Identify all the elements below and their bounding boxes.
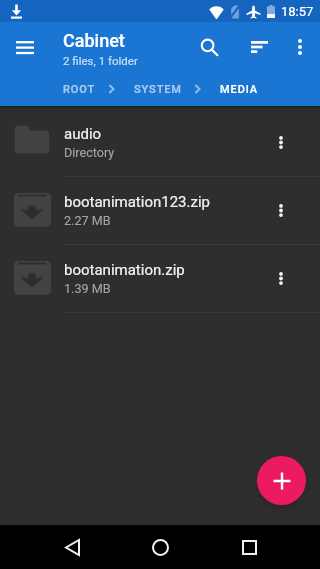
staticText: bootanimation123.zip [64, 193, 210, 211]
staticText: 2.27 MB [64, 213, 111, 228]
button[interactable]: More options [282, 29, 318, 65]
button[interactable]: ROOT [63, 83, 96, 96]
button[interactable]: Home [140, 527, 180, 567]
button[interactable]: Add [257, 456, 306, 505]
staticText: audio [64, 125, 102, 143]
button[interactable]: audio [0, 109, 320, 177]
button[interactable]: Recent apps [229, 527, 269, 567]
button[interactable]: bootanimation123.zip [0, 177, 320, 245]
staticText: 1.39 MB [64, 281, 111, 296]
staticText: SYSTEM [134, 83, 182, 96]
staticText: Directory [64, 145, 115, 160]
staticText: bootanimation.zip [64, 261, 185, 279]
staticText: 18:57 [281, 4, 314, 19]
staticText: ROOT [63, 83, 96, 96]
button[interactable]: Open navigation drawer [8, 30, 42, 64]
button[interactable]: MEDIA [220, 83, 259, 96]
staticText: 2 files, 1 folder [63, 54, 138, 67]
button[interactable]: SYSTEM [134, 83, 182, 96]
button[interactable]: File options [262, 177, 320, 244]
button[interactable]: File options [262, 245, 320, 312]
staticText: MEDIA [220, 83, 259, 96]
button[interactable]: Back [52, 527, 92, 567]
button[interactable]: bootanimation.zip [0, 245, 320, 313]
button[interactable]: Search [189, 27, 229, 67]
button[interactable]: File options [262, 109, 320, 176]
staticText: Cabinet [63, 30, 125, 51]
button[interactable]: Sort [239, 27, 279, 67]
